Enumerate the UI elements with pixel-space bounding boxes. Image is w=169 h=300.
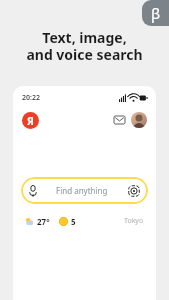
- button[interactable]: Find anything: [21, 177, 148, 204]
- button[interactable]: Mail: [111, 112, 127, 128]
- staticText: 5: [71, 216, 76, 227]
- staticText: Я: [27, 114, 34, 128]
- staticText: Tokyo: [124, 216, 144, 226]
- button[interactable]: Yandex: [22, 112, 39, 129]
- staticText: Text, image, and voice search: [26, 28, 143, 64]
- button[interactable]: 27°: [25, 214, 144, 228]
- staticText: 27°: [37, 216, 50, 227]
- staticText: β: [151, 3, 161, 23]
- button[interactable]: Profile: [131, 112, 147, 128]
- staticText: Find anything: [56, 185, 108, 196]
- staticText: 20:22: [22, 93, 40, 103]
- button[interactable]: Beta: [142, 0, 169, 26]
